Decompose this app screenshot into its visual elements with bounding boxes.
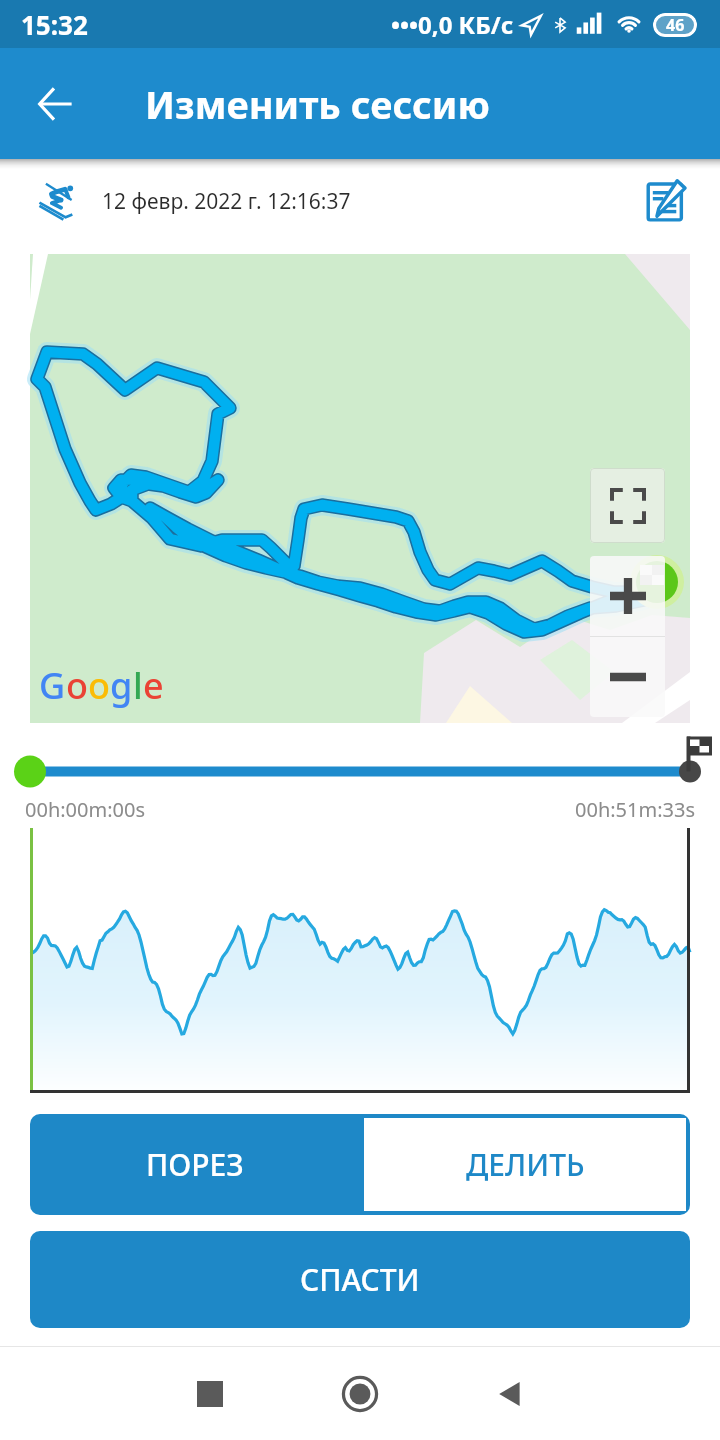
staticText: o bbox=[88, 661, 110, 710]
staticText: ПОРЕЗ bbox=[146, 1144, 244, 1185]
staticText: 46 bbox=[666, 14, 685, 36]
button[interactable]: Home bbox=[310, 1347, 410, 1440]
staticText: 12 февр. 2022 г. 12:16:37 bbox=[102, 187, 351, 216]
button[interactable]: 12 февр. 2022 г. 12:16:37 bbox=[0, 169, 720, 247]
button[interactable]: Edit bbox=[634, 169, 702, 233]
button[interactable]: ПОРЕЗ bbox=[30, 1114, 360, 1215]
button[interactable]: Zoom out bbox=[590, 637, 665, 717]
staticText: 00h:51m:33s bbox=[575, 796, 695, 823]
staticText: g bbox=[110, 661, 133, 710]
button[interactable]: ДЕЛИТЬ bbox=[364, 1118, 686, 1211]
button[interactable]: СПАСТИ bbox=[30, 1231, 690, 1328]
button[interactable]: Fullscreen bbox=[590, 468, 665, 543]
staticText: o bbox=[66, 661, 88, 710]
staticText: ДЕЛИТЬ bbox=[466, 1144, 585, 1185]
button[interactable]: Back bbox=[460, 1347, 560, 1440]
staticText: G bbox=[39, 661, 66, 710]
staticText: 00h:00m:00s bbox=[25, 796, 145, 823]
staticText: l bbox=[133, 661, 143, 710]
staticText: e bbox=[143, 661, 164, 710]
button[interactable]: Map bbox=[30, 254, 690, 723]
button[interactable]: Back bbox=[20, 68, 92, 140]
staticText: 15:32 bbox=[21, 7, 88, 42]
button[interactable]: Recents bbox=[160, 1347, 260, 1440]
staticText: •••0,0 КБ/c bbox=[391, 8, 514, 41]
button[interactable]: Zoom in bbox=[590, 556, 665, 636]
staticText: СПАСТИ bbox=[300, 1259, 420, 1300]
staticText: Изменить сессию bbox=[145, 78, 490, 130]
